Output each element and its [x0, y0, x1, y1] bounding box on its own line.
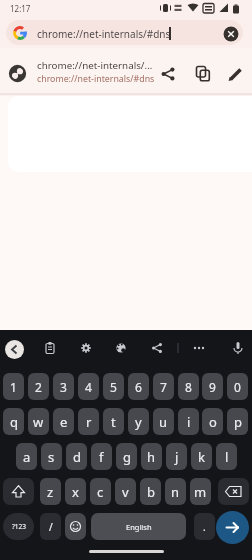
- staticText: p: [234, 413, 242, 431]
- staticText: a: [23, 448, 31, 466]
- button[interactable]: z: [40, 478, 61, 505]
- button[interactable]: v: [115, 478, 136, 505]
- staticText: z: [47, 483, 54, 501]
- staticText: 5: [110, 379, 117, 395]
- button[interactable]: 1: [3, 373, 24, 400]
- staticText: i: [187, 413, 191, 431]
- button[interactable]: [5, 340, 24, 359]
- button[interactable]: c: [90, 478, 111, 505]
- button[interactable]: [158, 64, 178, 84]
- staticText: ?123: [12, 522, 26, 531]
- button[interactable]: g: [116, 443, 137, 470]
- button[interactable]: 0: [227, 373, 248, 400]
- staticText: c: [97, 483, 104, 501]
- button[interactable]: [65, 513, 86, 540]
- button[interactable]: 3: [53, 373, 74, 400]
- staticText: d: [73, 448, 81, 466]
- staticText: chrome://net-internals/#dns: [37, 27, 171, 41]
- button[interactable]: [147, 338, 167, 358]
- button[interactable]: n: [165, 478, 186, 505]
- button[interactable]: w: [28, 408, 49, 435]
- button[interactable]: ?123: [3, 513, 34, 540]
- staticText: 9: [209, 379, 216, 395]
- button[interactable]: [218, 478, 249, 505]
- button[interactable]: m: [190, 478, 211, 505]
- button[interactable]: [193, 64, 213, 84]
- button[interactable]: 2: [28, 373, 49, 400]
- button[interactable]: h: [141, 443, 162, 470]
- staticText: m: [194, 483, 207, 501]
- staticText: v: [122, 483, 129, 501]
- staticText: w: [33, 413, 44, 431]
- button[interactable]: 6: [128, 373, 149, 400]
- button[interactable]: d: [66, 443, 87, 470]
- staticText: u: [159, 413, 168, 431]
- button[interactable]: q: [3, 408, 24, 435]
- button[interactable]: u: [153, 408, 174, 435]
- staticText: r: [86, 413, 92, 431]
- staticText: chrome://net-internals/...: [37, 59, 153, 72]
- button[interactable]: j: [166, 443, 187, 470]
- button[interactable]: o: [202, 408, 223, 435]
- button[interactable]: 8: [178, 373, 199, 400]
- button[interactable]: p: [227, 408, 248, 435]
- button[interactable]: a: [16, 443, 37, 470]
- staticText: j: [175, 448, 179, 466]
- staticText: x: [72, 483, 79, 501]
- button[interactable]: [6, 20, 243, 45]
- button[interactable]: [189, 338, 209, 358]
- staticText: f: [99, 448, 104, 466]
- staticText: n: [171, 483, 180, 501]
- staticText: o: [209, 413, 217, 431]
- button[interactable]: 7: [153, 373, 174, 400]
- button[interactable]: [228, 338, 248, 358]
- button[interactable]: [216, 511, 249, 544]
- staticText: 6: [135, 379, 142, 395]
- button[interactable]: [225, 64, 245, 84]
- button[interactable]: /: [40, 513, 61, 540]
- staticText: k: [198, 448, 205, 466]
- button[interactable]: .: [194, 513, 215, 540]
- button[interactable]: [40, 338, 60, 358]
- button[interactable]: y: [128, 408, 149, 435]
- staticText: 1: [10, 379, 17, 395]
- staticText: y: [135, 413, 142, 431]
- staticText: t: [111, 413, 116, 431]
- button[interactable]: [76, 338, 96, 358]
- button[interactable]: k: [191, 443, 212, 470]
- staticText: q: [10, 413, 18, 431]
- button[interactable]: 4: [78, 373, 99, 400]
- staticText: e: [60, 413, 68, 431]
- button[interactable]: e: [53, 408, 74, 435]
- button[interactable]: r: [78, 408, 99, 435]
- button[interactable]: [3, 478, 34, 505]
- staticText: English: [126, 522, 152, 532]
- staticText: g: [123, 448, 131, 466]
- staticText: 0: [234, 379, 241, 395]
- button[interactable]: b: [140, 478, 161, 505]
- staticText: s: [48, 448, 55, 466]
- button[interactable]: [0, 48, 252, 93]
- staticText: l: [225, 448, 229, 466]
- button[interactable]: s: [41, 443, 62, 470]
- staticText: 12:17: [10, 3, 31, 14]
- button[interactable]: English: [91, 513, 186, 540]
- staticText: b: [147, 483, 155, 501]
- button[interactable]: i: [178, 408, 199, 435]
- button[interactable]: 9: [202, 373, 223, 400]
- staticText: chrome://net-internals/#dns: [37, 73, 155, 85]
- button[interactable]: 5: [103, 373, 124, 400]
- staticText: 2: [35, 379, 42, 395]
- button[interactable]: x: [65, 478, 86, 505]
- staticText: 4: [85, 379, 92, 395]
- staticText: 7: [160, 379, 167, 395]
- button[interactable]: f: [91, 443, 112, 470]
- staticText: 3: [60, 379, 67, 395]
- staticText: 8: [185, 379, 192, 395]
- button[interactable]: t: [103, 408, 124, 435]
- staticText: h: [147, 448, 156, 466]
- staticText: /: [49, 520, 53, 534]
- button[interactable]: [223, 26, 239, 42]
- button[interactable]: l: [216, 443, 237, 470]
- button[interactable]: [111, 338, 131, 358]
